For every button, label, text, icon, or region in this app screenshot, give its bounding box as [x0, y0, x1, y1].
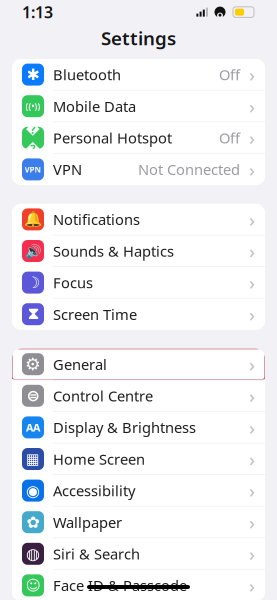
staticText: Sounds & Haptics: [53, 241, 174, 261]
staticText: ›: [249, 157, 255, 182]
button[interactable]: ⚙: [12, 349, 265, 380]
button[interactable]: ✱: [12, 59, 265, 90]
button[interactable]: 🔊: [12, 235, 265, 266]
button[interactable]: ☽: [12, 267, 265, 298]
button[interactable]: VPN: [12, 154, 265, 185]
staticText: General: [53, 354, 107, 374]
staticText: Siri & Search: [53, 544, 140, 564]
staticText: VPN: [53, 160, 82, 179]
staticText: Display & Brightness: [53, 418, 196, 437]
staticText: Mobile Data: [53, 96, 136, 116]
button[interactable]: ��: [12, 122, 265, 153]
staticText: ◍: [26, 545, 40, 563]
staticText: ›: [249, 94, 255, 119]
staticText: ›: [249, 352, 255, 377]
staticText: ✱: [26, 65, 39, 84]
staticText: Not Connected: [138, 160, 240, 179]
button[interactable]: 🔔: [12, 204, 265, 235]
staticText: Home Screen: [53, 449, 145, 469]
staticText: Control Centre: [53, 386, 153, 406]
staticText: AA: [26, 420, 40, 434]
staticText: ›: [249, 207, 255, 232]
staticText: VPN: [24, 164, 41, 175]
staticText: ✿: [26, 513, 39, 531]
staticText: ›: [249, 125, 255, 150]
button[interactable]: AA: [12, 412, 265, 443]
staticText: ⚙: [25, 354, 41, 374]
staticText: ›: [249, 302, 255, 327]
staticText: Face ID & Passcode: [53, 576, 187, 595]
staticText: Bluetooth: [53, 65, 121, 84]
staticText: Wallpaper: [53, 512, 122, 532]
staticText: Notifications: [53, 210, 140, 229]
button[interactable]: ((•)): [12, 91, 265, 122]
button[interactable]: ◍: [12, 538, 265, 569]
staticText: ◉: [26, 481, 40, 500]
button[interactable]: ⊜: [12, 380, 265, 411]
staticText: Focus: [53, 273, 93, 292]
staticText: ☺: [25, 577, 40, 594]
staticText: ›: [249, 415, 255, 440]
button[interactable]: ⧗: [12, 299, 265, 330]
staticText: ⧗: [27, 306, 38, 322]
staticText: ⊜: [26, 387, 39, 405]
staticText: Settings: [101, 26, 176, 50]
staticText: ›: [249, 510, 255, 535]
staticText: 🔔: [24, 211, 42, 228]
button[interactable]: ☺: [12, 570, 265, 600]
staticText: Off: [219, 65, 240, 84]
staticText: ›: [249, 383, 255, 408]
staticText: Personal Hotspot: [53, 128, 172, 148]
staticText: 1:13: [22, 1, 53, 23]
staticText: ��: [25, 118, 40, 157]
staticText: ›: [249, 573, 255, 598]
button[interactable]: ▦: [12, 443, 265, 474]
staticText: ☽: [26, 273, 40, 292]
staticText: ›: [249, 541, 255, 566]
button[interactable]: ✿: [12, 507, 265, 538]
staticText: Screen Time: [53, 304, 137, 324]
staticText: ›: [249, 447, 255, 471]
staticText: Off: [219, 128, 240, 148]
staticText: ▦: [26, 451, 40, 467]
staticText: Accessibility: [53, 481, 135, 500]
staticText: ›: [249, 270, 255, 295]
button[interactable]: ◉: [12, 475, 265, 506]
staticText: ›: [249, 62, 255, 87]
staticText: ((•)): [25, 101, 40, 111]
staticText: ›: [249, 478, 255, 503]
staticText: 🔊: [24, 243, 41, 259]
staticText: ›: [249, 239, 255, 263]
